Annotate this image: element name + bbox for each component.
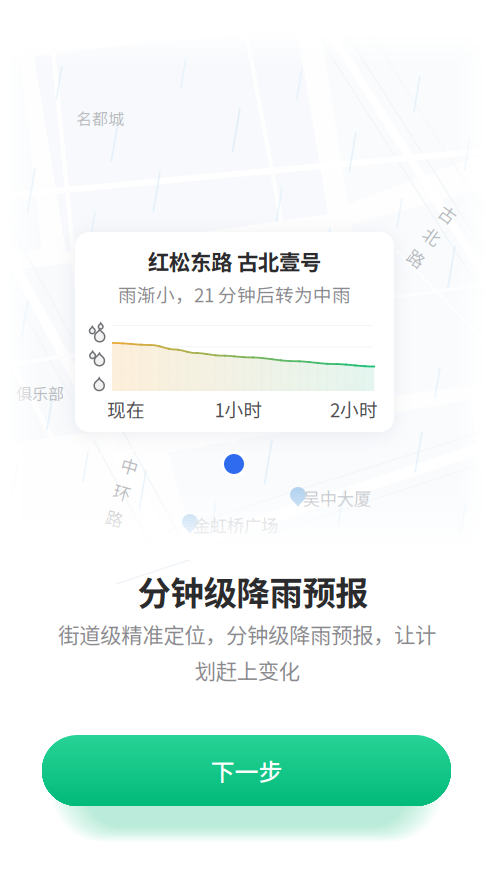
- staticText: 现在: [107, 395, 145, 422]
- staticText: 红松东路 古北壹号: [148, 246, 321, 276]
- staticText: 分钟级降雨预报: [137, 567, 368, 615]
- staticText: 雨渐小，21 分钟后转为中雨: [118, 280, 351, 307]
- staticText: 路: [113, 506, 130, 532]
- staticText: 北: [423, 223, 440, 249]
- staticText: 俱乐部: [16, 381, 64, 405]
- staticText: 1小时: [214, 395, 262, 422]
- staticText: 路: [423, 250, 440, 276]
- staticText: 2小时: [330, 395, 378, 422]
- staticText: 古: [423, 196, 440, 221]
- staticText: 名都城: [76, 106, 124, 130]
- staticText: 街道级精准定位，分钟级降雨预报，让计划赶上变化: [58, 619, 436, 685]
- staticText: 吴中大厦: [303, 485, 371, 511]
- staticText: 中: [113, 452, 130, 477]
- staticText: 金虹桥广场: [193, 512, 278, 538]
- button[interactable]: 下一步: [42, 735, 451, 806]
- staticText: 环: [113, 479, 130, 505]
- staticText: 下一步: [210, 753, 282, 788]
